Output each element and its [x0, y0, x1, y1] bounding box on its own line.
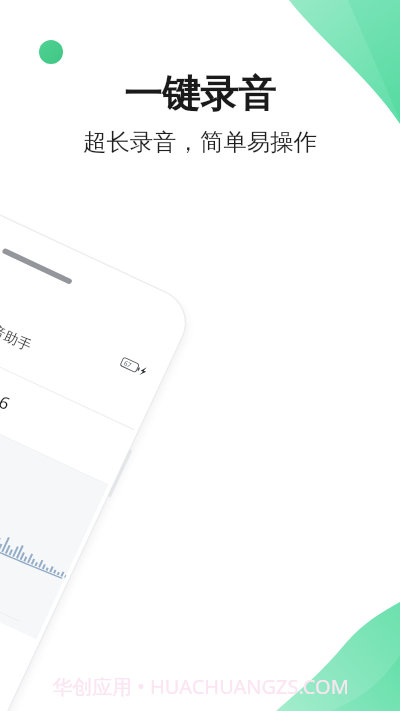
staticText: 超长录音，简单易操作 [0, 127, 400, 156]
staticText: 华创应用 • HUACHUANGZS.COM [52, 673, 349, 700]
staticText: 一键录音 [0, 70, 400, 118]
